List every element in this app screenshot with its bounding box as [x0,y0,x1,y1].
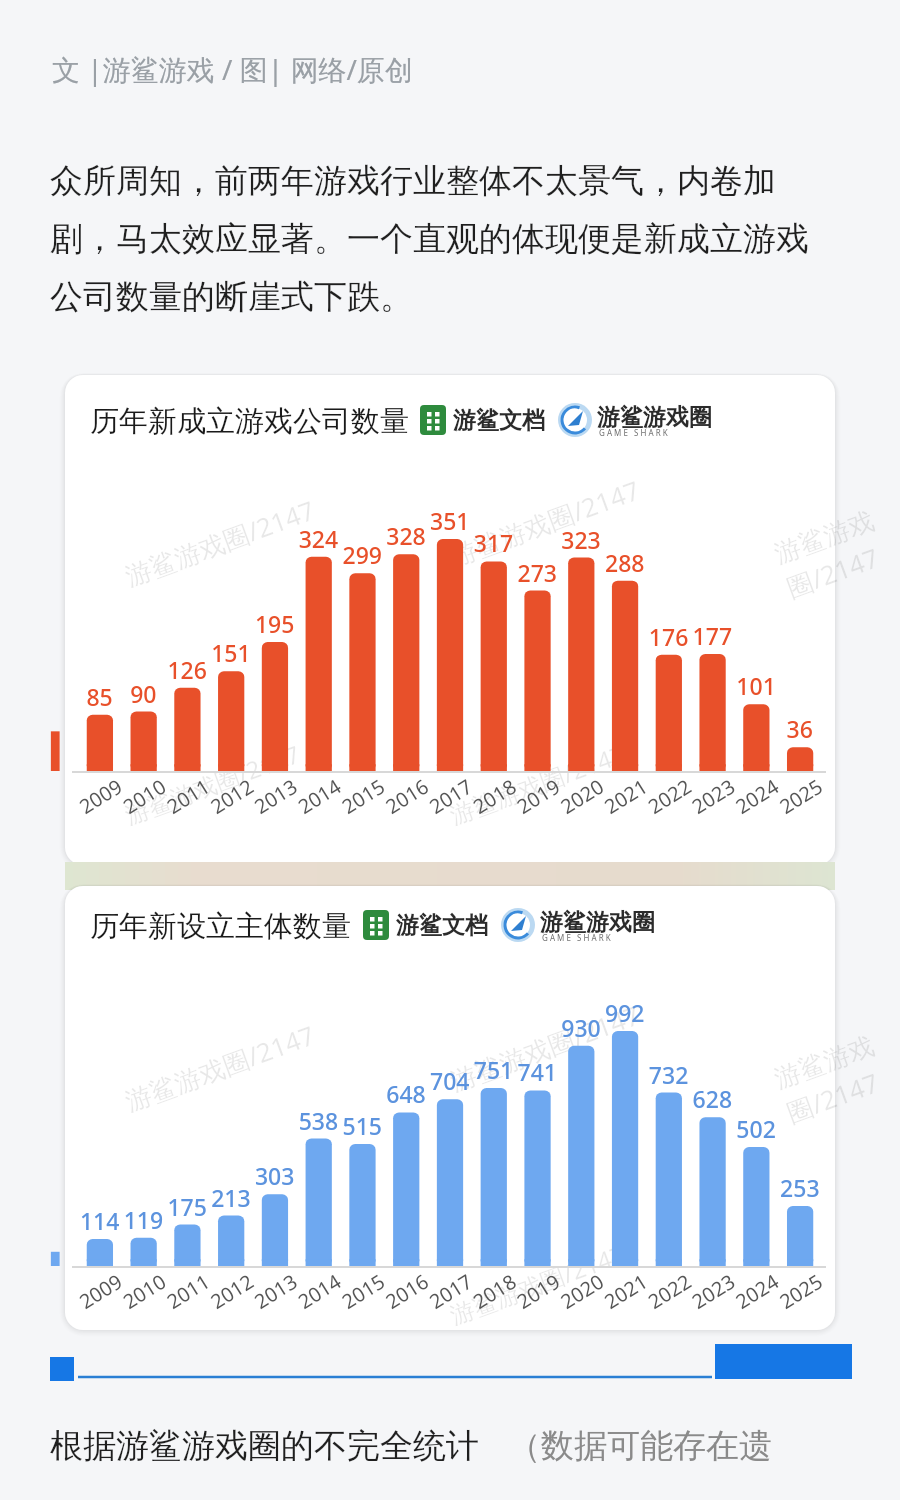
button[interactable]: Article about new game company registrat… [0,0,900,1500]
